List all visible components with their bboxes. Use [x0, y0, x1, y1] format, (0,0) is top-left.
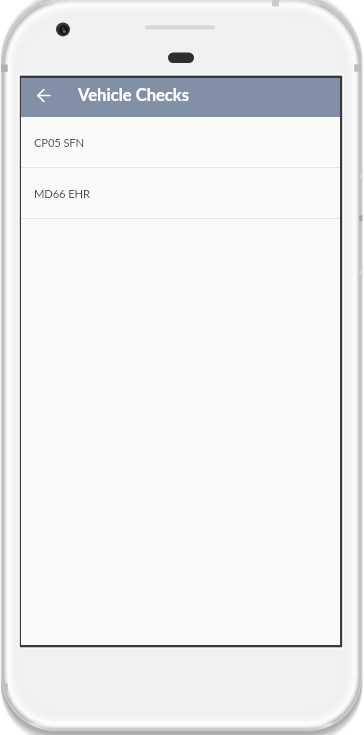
staticText: CP05 SFN [34, 136, 85, 150]
button[interactable]: MD66 EHR [21, 168, 340, 219]
staticText: MD66 EHR [34, 187, 90, 201]
staticText: Vehicle Checks [78, 85, 190, 105]
button[interactable]: CP05 SFN [21, 117, 340, 168]
button[interactable]: Navigate up [26, 78, 60, 112]
